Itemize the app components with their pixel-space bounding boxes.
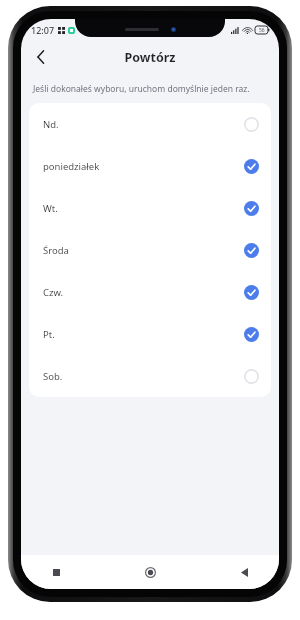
staticText: Sob. [43,370,244,383]
staticText: poniedziałek [43,160,244,173]
button[interactable]: Wt. [29,187,271,229]
staticText: Czw. [43,286,244,299]
staticText: Jeśli dokonałeś wyboru, uruchom domyślni… [33,83,250,95]
staticText: Pt. [43,328,244,341]
button[interactable]: Pt. [29,313,271,355]
button[interactable]: Sob. [29,355,271,397]
button[interactable]: Back [231,559,257,585]
staticText: 56 [259,27,265,34]
button[interactable]: Recent apps [43,559,69,585]
staticText: 12:07 [31,24,55,36]
button[interactable]: Nd. [29,103,271,145]
button[interactable]: Środa [29,229,271,271]
staticText: Środa [43,244,244,257]
staticText: Powtórz [124,49,176,66]
button[interactable]: poniedziałek [29,145,271,187]
button[interactable]: Back [26,42,56,72]
button[interactable]: Home [137,559,163,585]
button[interactable]: Czw. [29,271,271,313]
staticText: Wt. [43,202,244,215]
staticText: Nd. [43,118,244,131]
